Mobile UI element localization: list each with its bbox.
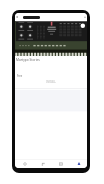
staticText: INSTALL <box>46 80 56 84</box>
button[interactable]: Navigation menu <box>16 14 24 21</box>
staticText: Free <box>17 74 23 78</box>
staticText: Martypo Stories <box>16 58 40 62</box>
button[interactable]: App screenshot <box>15 21 87 56</box>
button[interactable]: INSTALL <box>43 79 59 85</box>
button[interactable]: Account <box>70 160 87 168</box>
button[interactable] <box>23 16 40 19</box>
button[interactable]: More options <box>81 15 86 20</box>
button[interactable]: Movies <box>52 160 70 168</box>
button[interactable]: Apps <box>34 160 52 168</box>
button[interactable]: Games <box>16 160 34 168</box>
